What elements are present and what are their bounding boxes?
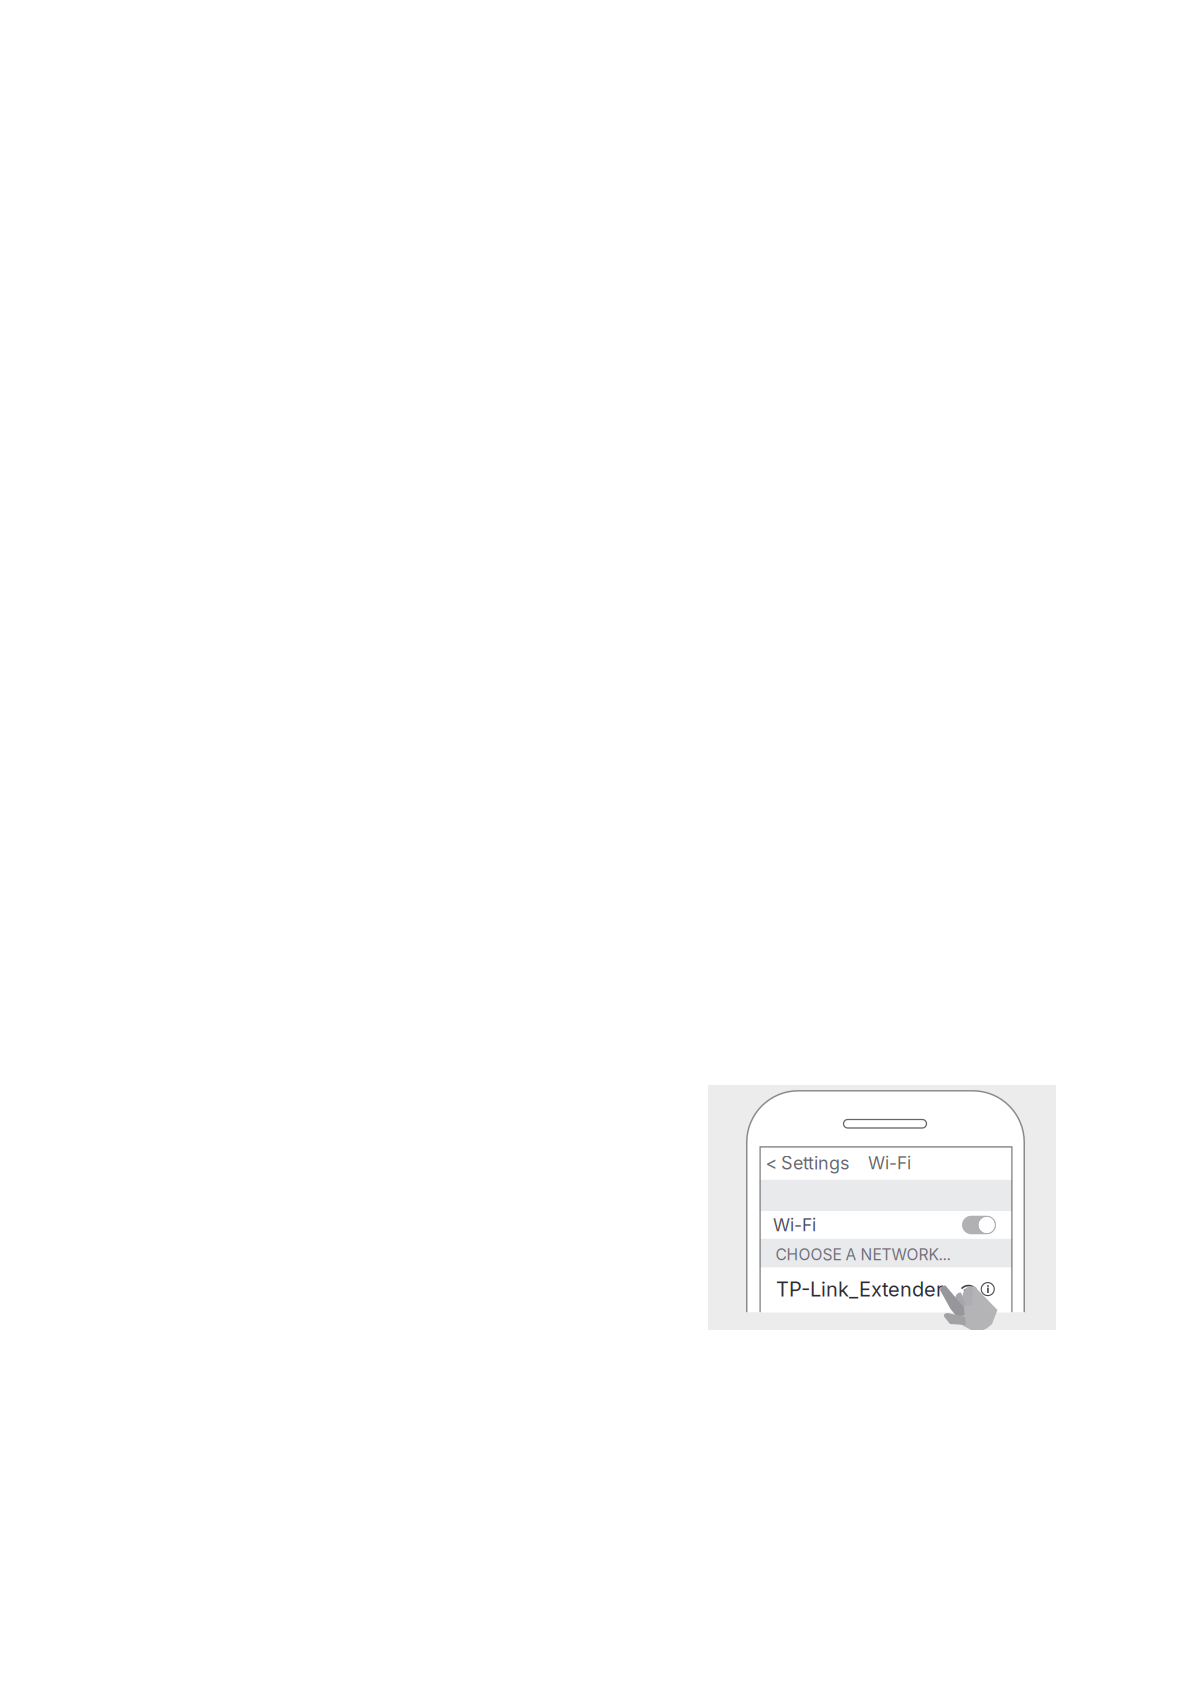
staticText: Wi-Fi bbox=[868, 1153, 911, 1174]
staticText: Wi-Fi bbox=[773, 1214, 816, 1235]
button[interactable]: TP-Link_Extender bbox=[759, 1268, 976, 1309]
button[interactable]: Back to Settings bbox=[759, 1146, 854, 1180]
button[interactable]: More info about TP-Link_Extender bbox=[981, 1268, 994, 1309]
staticText: TP-Link_Extender bbox=[776, 1277, 943, 1301]
staticText: < bbox=[765, 1152, 777, 1174]
staticText: Settings bbox=[781, 1152, 850, 1174]
button[interactable]: Wi-Fi bbox=[759, 1211, 1012, 1239]
staticText: CHOOSE A NETWORK... bbox=[775, 1245, 950, 1264]
